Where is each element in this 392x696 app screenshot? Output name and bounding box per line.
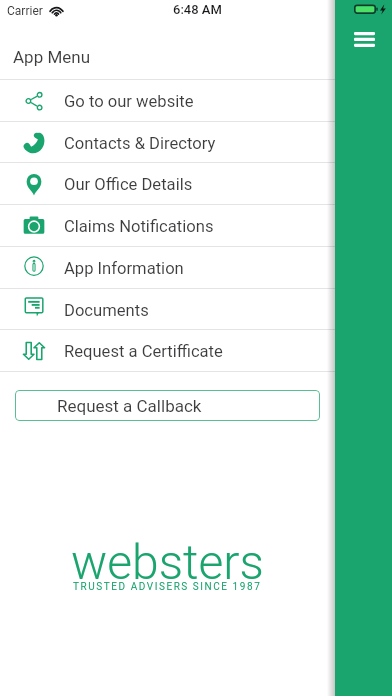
staticText: Go to our website — [64, 92, 194, 111]
staticText: TRUSTED ADVISERS SINCE 1987 — [73, 581, 262, 593]
button[interactable]: Request a Certifficate — [0, 330, 335, 372]
button[interactable]: Our Office Details — [0, 163, 335, 205]
button[interactable]: Claims Notifications — [0, 205, 335, 247]
staticText: Carrier — [7, 4, 43, 18]
staticText: websters — [71, 534, 264, 590]
staticText: Our Office Details — [64, 175, 193, 194]
staticText: 6:48 AM — [173, 2, 222, 17]
button[interactable]: Go to our website — [0, 80, 335, 122]
button[interactable]: App Information — [0, 247, 335, 289]
staticText: App Menu — [13, 47, 91, 67]
button[interactable]: Request a Callback — [15, 390, 320, 421]
staticText: Request a Callback — [57, 396, 202, 416]
button[interactable]: Documents — [0, 289, 335, 331]
staticText: Contacts & Directory — [64, 134, 216, 153]
staticText: App Information — [64, 259, 184, 278]
staticText: Claims Notifications — [64, 217, 214, 236]
staticText: Documents — [64, 301, 149, 320]
button[interactable]: Open navigation menu — [344, 24, 385, 54]
button[interactable]: Contacts & Directory — [0, 122, 335, 164]
staticText: Request a Certifficate — [64, 342, 223, 361]
